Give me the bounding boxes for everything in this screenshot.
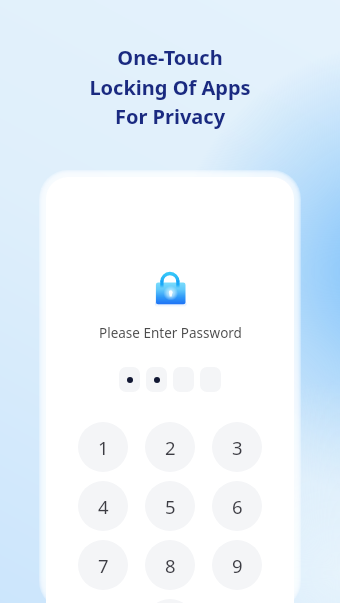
button[interactable]: 4: [78, 481, 128, 531]
staticText: 2: [165, 435, 176, 460]
staticText: One-Touch Locking Of Apps For Privacy: [89, 44, 251, 130]
button[interactable]: 0: [145, 599, 195, 603]
staticText: 7: [98, 553, 109, 578]
other: Lock: [152, 270, 188, 306]
staticText: 3: [232, 435, 243, 460]
button[interactable]: 6: [212, 481, 262, 531]
staticText: 8: [165, 553, 176, 578]
button[interactable]: 9: [212, 540, 262, 590]
staticText: Please Enter Password: [99, 324, 242, 342]
staticText: 9: [232, 553, 243, 578]
button[interactable]: 3: [212, 422, 262, 472]
button[interactable]: 1: [78, 422, 128, 472]
staticText: 5: [165, 494, 176, 519]
button[interactable]: 8: [145, 540, 195, 590]
staticText: 4: [98, 494, 109, 519]
staticText: 1: [98, 435, 109, 460]
button[interactable]: 2: [145, 422, 195, 472]
button[interactable]: 7: [78, 540, 128, 590]
button[interactable]: 5: [145, 481, 195, 531]
staticText: 6: [232, 494, 243, 519]
